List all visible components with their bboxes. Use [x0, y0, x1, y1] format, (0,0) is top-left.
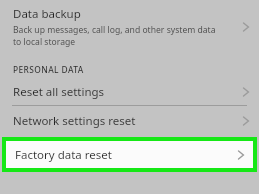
button[interactable]: Data backup — [0, 0, 259, 52]
staticText: PERSONAL DATA — [13, 64, 84, 75]
staticText: Factory data reset — [15, 147, 112, 163]
staticText: Data backup — [13, 6, 81, 22]
other: Factory data reset — [233, 147, 249, 163]
other: Data backup — [238, 19, 254, 35]
staticText: Back up messages, call log, and other sy… — [13, 24, 217, 47]
staticText: Network settings reset — [13, 113, 136, 129]
staticText: Reset all settings — [13, 84, 105, 100]
other: Network settings reset — [238, 113, 254, 129]
button[interactable]: Network settings reset — [0, 106, 259, 135]
button[interactable]: Factory data reset — [6, 141, 253, 168]
button[interactable]: Reset all settings — [0, 79, 259, 105]
other: Reset all settings — [238, 84, 254, 100]
